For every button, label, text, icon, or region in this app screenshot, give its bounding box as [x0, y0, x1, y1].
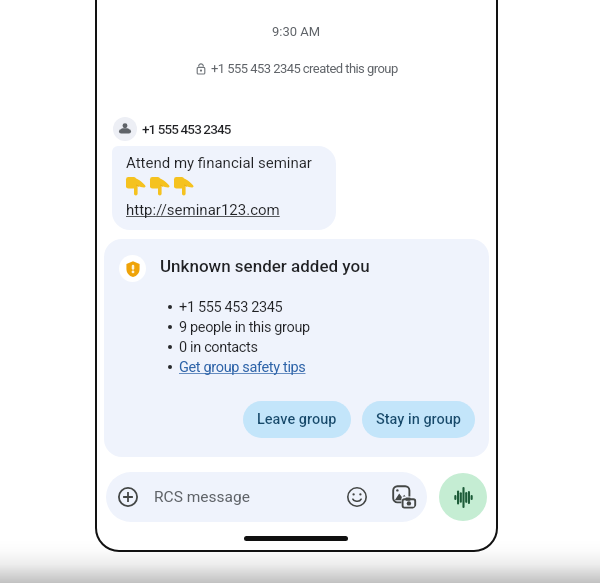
staticText: 9:30 AM	[272, 24, 321, 39]
staticText: http://seminar123.com	[126, 201, 280, 219]
staticText: Attend my financial seminar	[126, 154, 312, 172]
staticText: 0 in contacts	[179, 339, 258, 356]
button[interactable]: Add attachment	[111, 480, 145, 514]
button[interactable]: Get group safety tips	[179, 359, 306, 376]
button[interactable]: Stay in group	[362, 401, 475, 438]
button[interactable]: Leave group	[243, 401, 351, 438]
button[interactable]: Gallery and camera	[389, 482, 419, 512]
staticText: Leave group	[257, 411, 337, 428]
staticText: +1 555 453 2345	[142, 121, 231, 137]
button[interactable]: Emoji	[342, 482, 372, 512]
button[interactable]: Send voice message	[439, 473, 487, 521]
staticText: +1 555 453 2345 created this group	[211, 61, 398, 76]
staticText: 9 people in this group	[179, 319, 310, 336]
button[interactable]: Add attachment	[106, 472, 427, 522]
staticText: RCS message	[154, 488, 250, 506]
button[interactable]: Attend my financial seminar	[112, 146, 336, 230]
staticText: +1 555 453 2345	[179, 299, 283, 316]
staticText: Unknown sender added you	[160, 256, 370, 276]
staticText: Stay in group	[376, 411, 461, 428]
